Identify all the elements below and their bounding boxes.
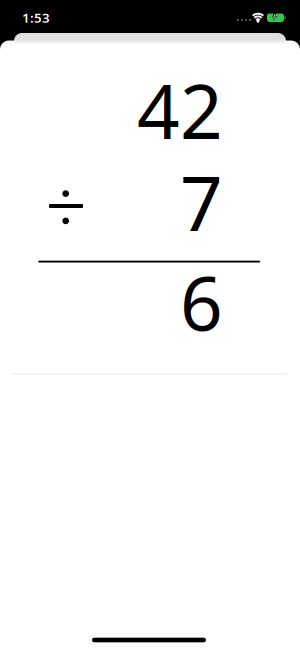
staticText: 7 [180, 152, 223, 252]
staticText: 6 [180, 252, 223, 351]
staticText: 42 [137, 60, 223, 160]
staticText: 1:53 [22, 9, 50, 26]
